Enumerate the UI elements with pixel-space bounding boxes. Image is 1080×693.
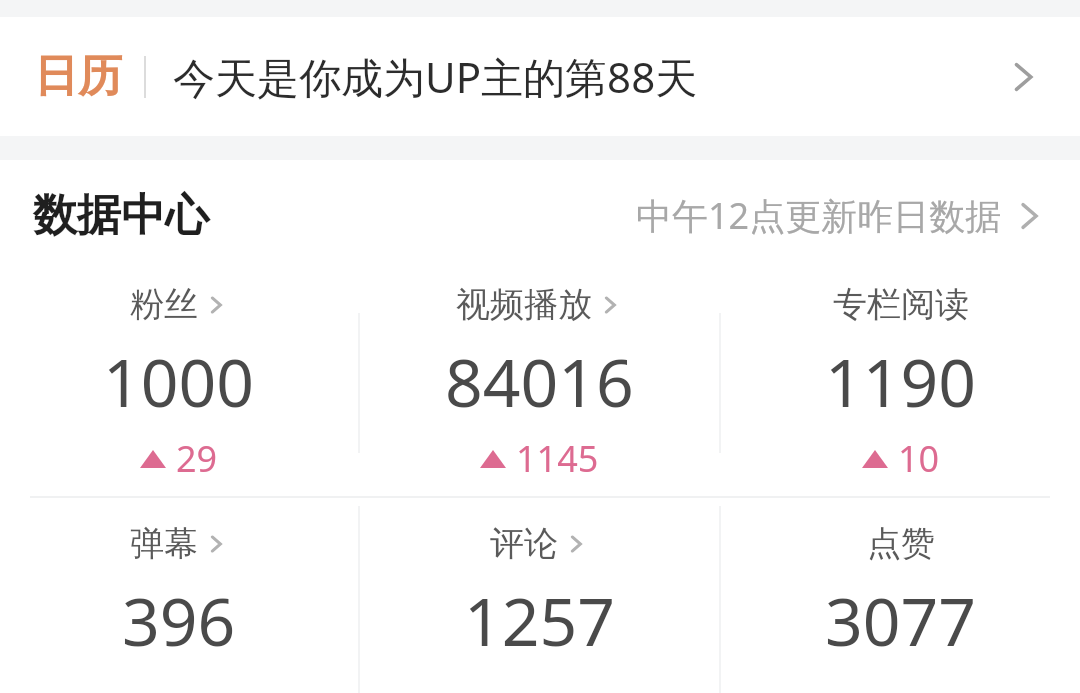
staticText: 1145 <box>516 434 599 483</box>
button[interactable]: 弹幕 <box>0 498 358 693</box>
other: 查看日历 <box>1000 54 1046 100</box>
staticText: 弹幕 <box>130 522 198 565</box>
staticText: 视频播放 <box>456 283 592 326</box>
staticText: 数据中心 <box>33 188 209 243</box>
button[interactable]: 专栏阅读 <box>721 283 1080 483</box>
button[interactable]: 日历 <box>0 17 1080 136</box>
staticText: 评论 <box>490 522 558 565</box>
button[interactable]: 评论 <box>360 498 719 693</box>
button[interactable]: 中午12点更新昨日数据 <box>636 191 1050 240</box>
button[interactable]: 视频播放 <box>360 283 719 483</box>
staticText: 粉丝 <box>130 283 198 326</box>
staticText: 1190 <box>825 336 977 426</box>
staticText: 日历 <box>34 49 122 104</box>
button[interactable]: 粉丝 <box>0 283 358 483</box>
staticText: 点赞 <box>867 522 935 565</box>
staticText: 84016 <box>445 336 634 426</box>
staticText: 专栏阅读 <box>833 283 969 326</box>
staticText: 今天是你成为UP主的第88天 <box>173 48 698 105</box>
staticText: 29 <box>176 434 218 483</box>
staticText: 396 <box>122 575 236 665</box>
button[interactable]: 点赞 <box>721 498 1080 693</box>
staticText: 1257 <box>464 575 616 665</box>
staticText: 10 <box>898 434 940 483</box>
staticText: 3077 <box>825 575 977 665</box>
staticText: 中午12点更新昨日数据 <box>636 191 1002 240</box>
staticText: 1000 <box>103 336 255 426</box>
